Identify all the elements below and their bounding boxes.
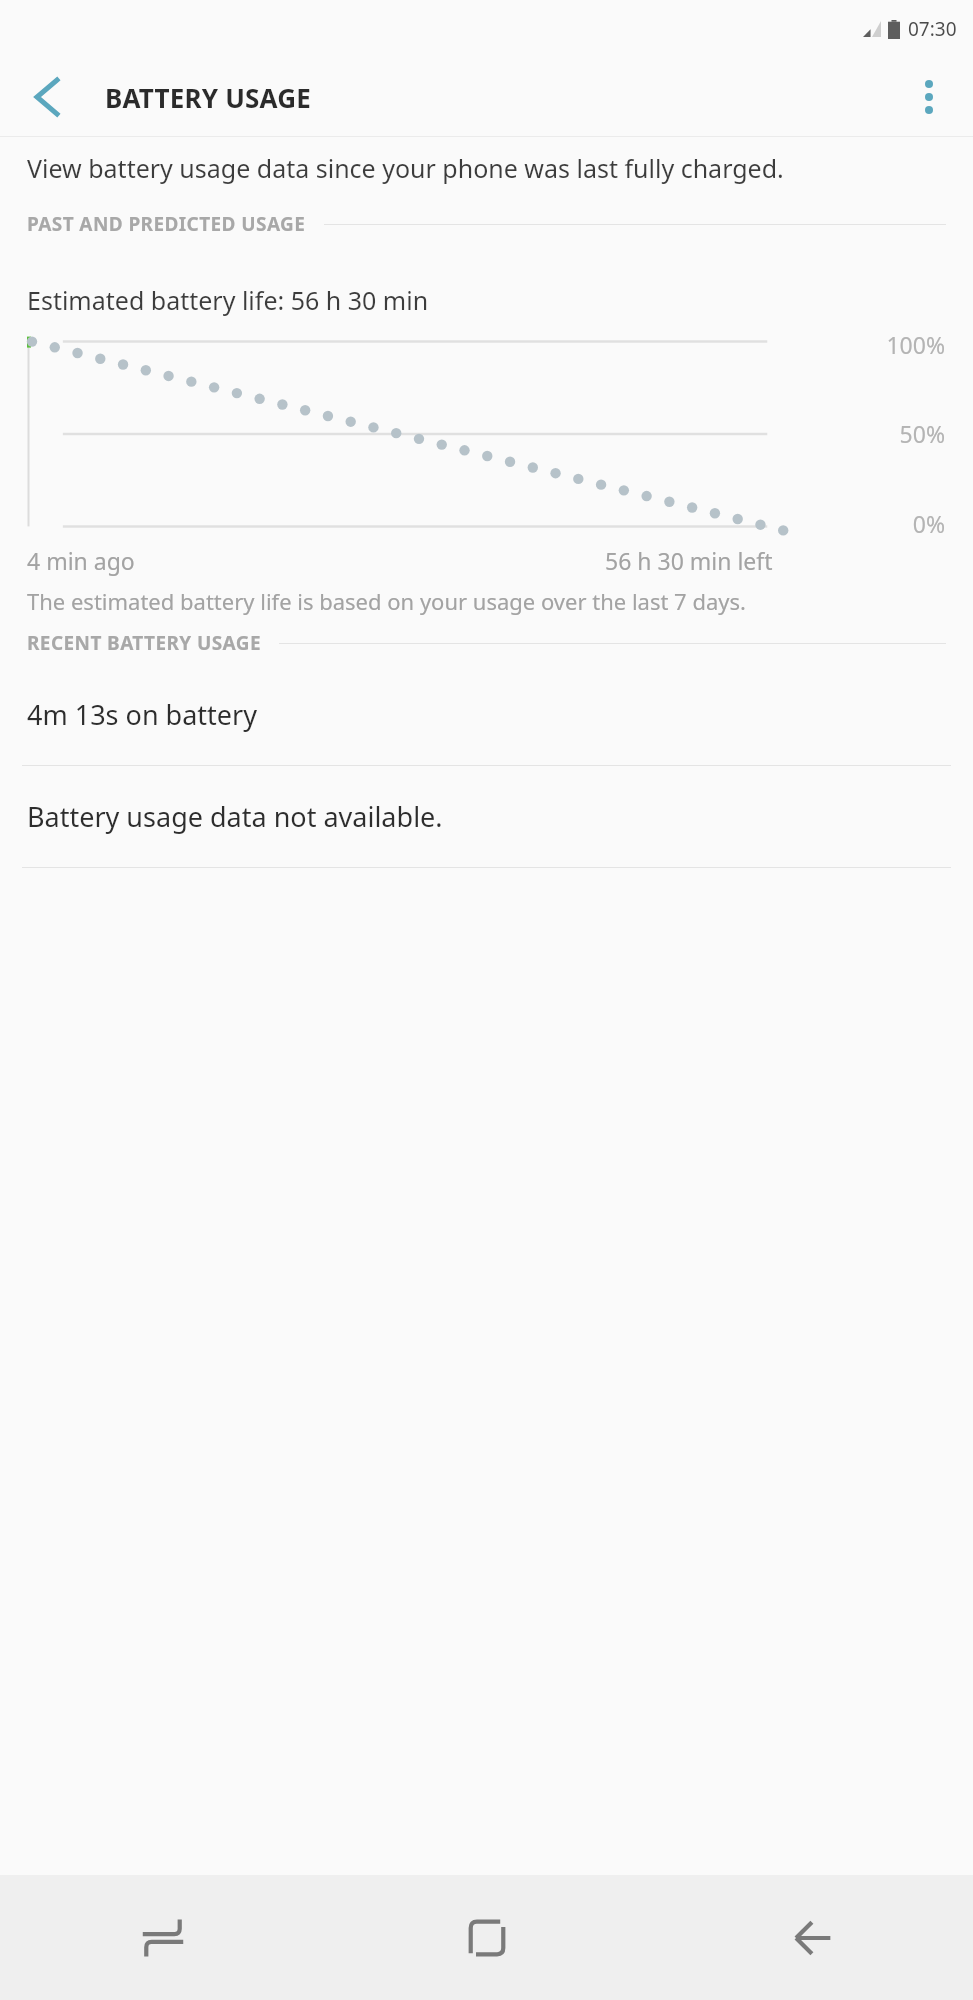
staticText: 50%	[899, 418, 945, 449]
staticText: 4 min ago	[27, 545, 135, 576]
staticText: RECENT BATTERY USAGE	[27, 630, 261, 656]
button[interactable]: 4m 13s on battery	[0, 664, 973, 766]
button[interactable]: Back	[649, 1875, 973, 2000]
button[interactable]: Recents	[0, 1875, 325, 2000]
staticText: 100%	[886, 329, 945, 360]
staticText: The estimated battery life is based on y…	[27, 586, 773, 616]
staticText: View battery usage data since your phone…	[27, 151, 913, 185]
staticText: Estimated battery life: 56 h 30 min	[27, 283, 429, 317]
staticText: 0%	[912, 508, 945, 539]
staticText: PAST AND PREDICTED USAGE	[27, 211, 306, 237]
button[interactable]: Home	[325, 1875, 649, 2000]
staticText: 4m 13s on battery	[27, 696, 257, 733]
button[interactable]: Back	[22, 72, 72, 122]
staticText: BATTERY USAGE	[105, 80, 312, 115]
button[interactable]: More options	[903, 71, 955, 123]
staticText: Battery usage data not available.	[27, 798, 443, 835]
staticText: 07:30	[908, 16, 957, 42]
button[interactable]: Battery usage data not available.	[0, 766, 973, 868]
staticText: 56 h 30 min left	[605, 545, 773, 576]
